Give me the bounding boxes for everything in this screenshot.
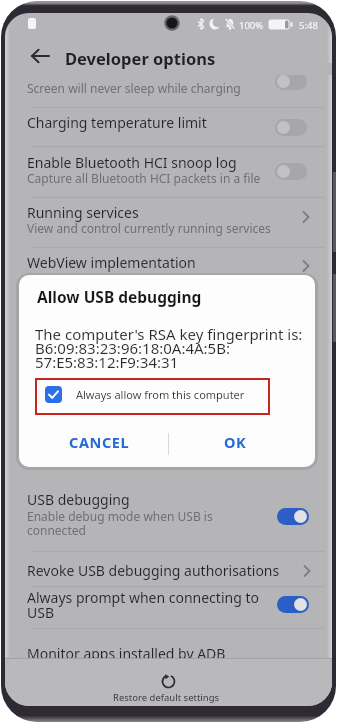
button[interactable] <box>277 596 309 613</box>
staticText: Restore default settings <box>113 691 220 704</box>
staticText: USB debugging <box>27 490 130 509</box>
staticText: View and control currently running servi… <box>27 220 271 236</box>
staticText: Allow USB debugging <box>37 286 202 307</box>
staticText: Charging temperature limit <box>27 113 207 132</box>
button[interactable] <box>5 248 332 275</box>
button[interactable] <box>5 587 332 628</box>
staticText: Enable debug mode when USB is connected <box>27 508 213 539</box>
button[interactable] <box>5 108 332 146</box>
button[interactable] <box>5 552 332 586</box>
button[interactable]: CANCEL <box>54 422 164 460</box>
staticText: Revoke USB debugging authorisations <box>27 561 280 580</box>
staticText: 100% <box>239 19 264 32</box>
staticText: Always prompt when connecting to USB <box>27 588 259 622</box>
button[interactable]: OK <box>184 422 294 460</box>
button[interactable] <box>277 508 309 525</box>
button[interactable] <box>275 163 307 180</box>
staticText: 5:48 <box>299 19 318 32</box>
staticText: OK <box>224 432 247 452</box>
button[interactable] <box>31 43 57 69</box>
staticText: WebView implementation <box>27 253 196 272</box>
staticText: Monitor apps installed by ADB <box>27 644 226 663</box>
button[interactable] <box>5 483 332 551</box>
staticText: Capture all Bluetooth HCI packets in a f… <box>27 170 261 186</box>
button[interactable] <box>5 198 332 247</box>
staticText: CANCEL <box>69 432 130 452</box>
button[interactable] <box>5 147 332 197</box>
staticText: Always allow from this computer <box>76 387 245 402</box>
staticText: Running services <box>27 203 139 222</box>
button[interactable] <box>275 119 307 136</box>
button[interactable] <box>275 73 307 90</box>
button[interactable] <box>125 668 215 704</box>
button[interactable] <box>45 386 62 403</box>
staticText: The computer's RSA key fingerprint is: B… <box>35 324 303 372</box>
staticText: Enable Bluetooth HCI snoop log <box>27 153 237 172</box>
staticText: Screen will never sleep while charging <box>27 80 241 96</box>
staticText: Developer options <box>65 47 216 69</box>
